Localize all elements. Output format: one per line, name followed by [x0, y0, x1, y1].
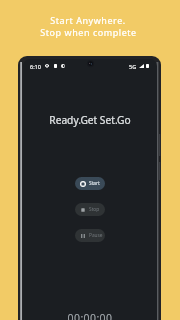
staticText: Ready.Get Set.Go: [23, 113, 157, 127]
staticText: 6:10: [30, 63, 41, 70]
staticText: Pause: [89, 232, 103, 239]
button[interactable]: Stop: [75, 203, 105, 216]
staticText: Start: [89, 180, 100, 187]
staticText: Start Anywhere.: [50, 14, 126, 26]
staticText: 5G: [129, 63, 137, 70]
staticText: Stop: [89, 206, 100, 213]
staticText: Stop when complete: [40, 26, 137, 38]
button[interactable]: Pause: [75, 229, 105, 242]
button[interactable]: Start: [75, 177, 105, 190]
staticText: 00:00:00: [23, 311, 157, 320]
